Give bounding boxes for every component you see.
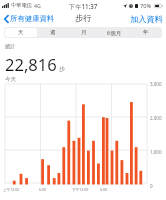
staticText: 70% — [140, 2, 152, 10]
staticText: 6:00 — [100, 187, 108, 192]
staticText: 總計 — [5, 43, 16, 50]
button[interactable]: 6個月 — [99, 28, 130, 37]
staticText: 今天 — [5, 76, 17, 83]
staticText: 22,816 — [5, 53, 57, 75]
staticText: 年 — [143, 29, 149, 36]
button[interactable]: 天 — [5, 28, 37, 37]
staticText: 月 — [81, 29, 87, 36]
staticText: 2,000 — [150, 115, 162, 121]
staticText: 6:00 — [39, 187, 47, 192]
staticText: 步行 — [75, 13, 92, 24]
staticText: 週 — [50, 29, 56, 36]
staticText: 0 — [150, 183, 153, 189]
staticText: 下午12:00 — [72, 187, 89, 192]
button[interactable]: 加入資料 — [129, 13, 164, 25]
staticText: 加入資料 — [130, 14, 163, 24]
button[interactable]: 週 — [37, 28, 68, 37]
staticText: 上午12:00 — [3, 187, 20, 192]
staticText: 3,000 — [150, 81, 162, 87]
staticText: 6個月 — [107, 29, 122, 37]
staticText: 4G — [34, 2, 41, 9]
staticText: 步 — [59, 65, 65, 73]
staticText: 所有健康資料 — [10, 14, 55, 23]
staticText: 1,000 — [150, 149, 162, 155]
staticText: 中華電信 — [11, 2, 32, 9]
button[interactable]: 所有健康資料 — [3, 13, 56, 24]
button[interactable]: 年 — [130, 28, 161, 37]
staticText: 天 — [18, 29, 24, 36]
button[interactable]: 月 — [68, 28, 99, 37]
staticText: 下午11:37 — [69, 2, 98, 10]
